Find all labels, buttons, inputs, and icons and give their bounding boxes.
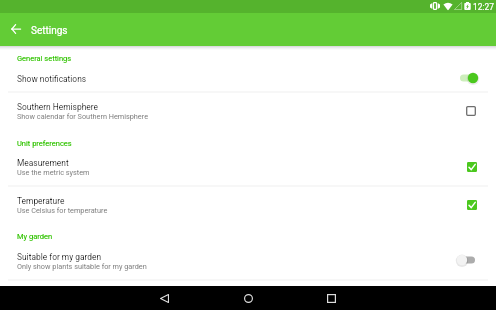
button[interactable]: Recents [313,286,349,310]
staticText: Settings [31,25,68,37]
staticText: My garden [17,232,53,241]
button[interactable] [0,242,496,279]
button[interactable] [0,185,496,222]
staticText: Unit preferences [17,139,72,148]
staticText: Suitable for my garden [17,252,102,262]
staticText: General settings [17,54,72,63]
staticText: Measurement [17,158,69,168]
button[interactable]: Suitable for my garden toggle [455,253,479,267]
staticText: Temperature [17,196,65,206]
button[interactable] [0,148,496,185]
button[interactable]: Unchecked [466,106,476,116]
button[interactable]: Show notifications toggle [458,71,482,85]
staticText: 12:27 [473,2,494,12]
staticText: Only show plants suitable for my garden [17,262,147,271]
staticText: Southern Hemisphere [17,102,98,112]
button[interactable]: Back [146,286,182,310]
button[interactable] [0,91,496,130]
button[interactable]: Checked [467,162,477,172]
button[interactable]: Home [230,286,266,310]
staticText: Show calendar for Southern Hemisphere [17,112,148,121]
button[interactable] [0,64,496,91]
button[interactable]: Checked [467,200,477,210]
staticText: Show notifications [17,74,87,84]
staticText: Use the metric system [17,168,90,177]
staticText: Use Celsius for temperature [17,206,108,215]
button[interactable]: Back [7,20,25,38]
